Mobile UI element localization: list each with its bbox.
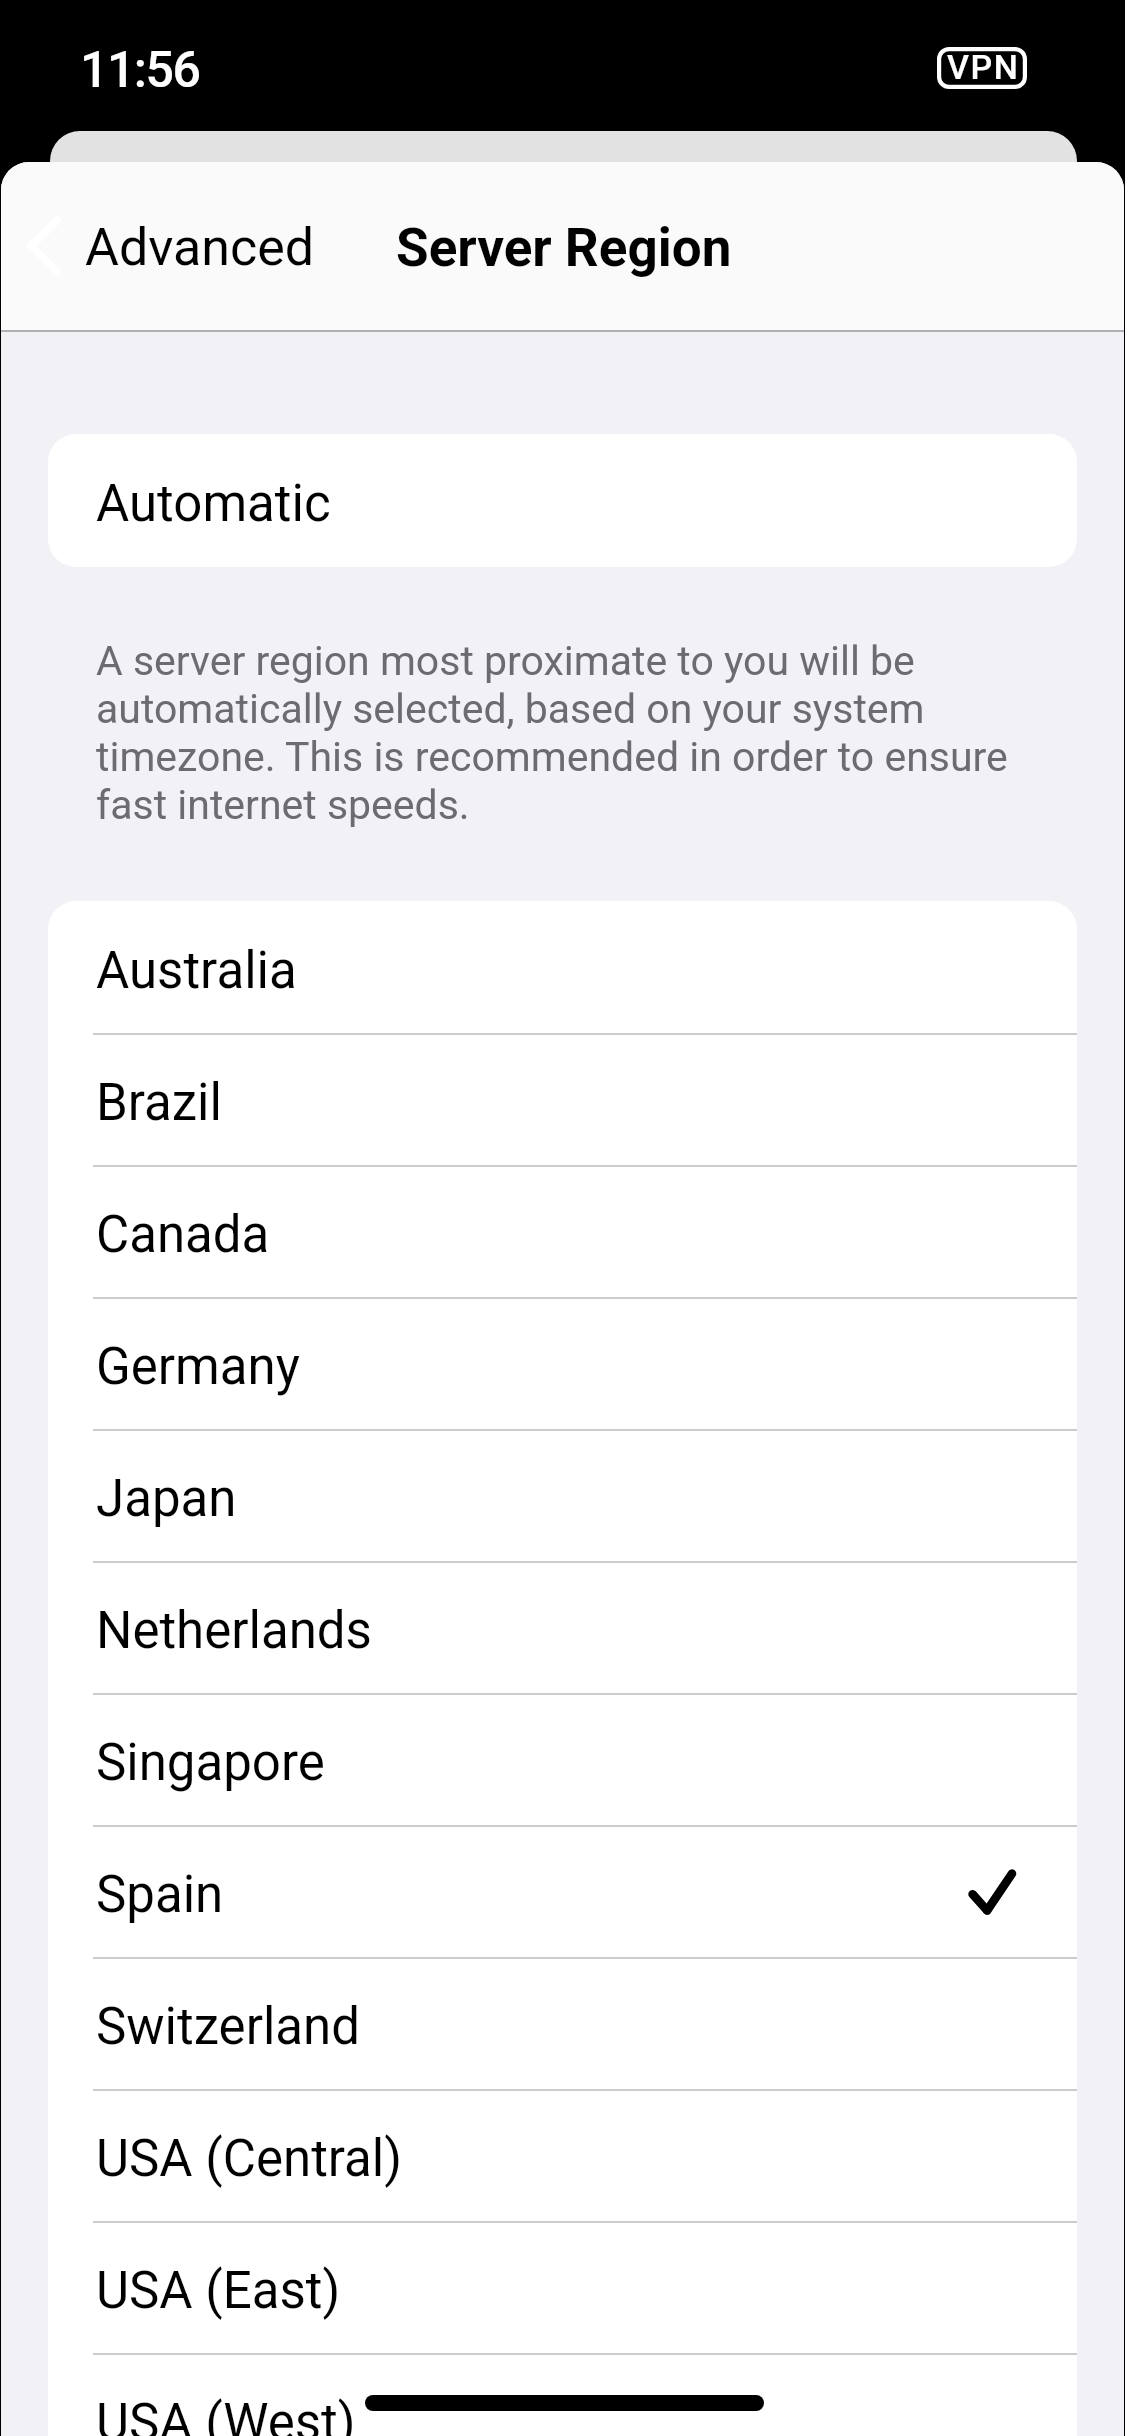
button[interactable]: USA (East) — [48, 2221, 1077, 2353]
button[interactable]: Automatic — [48, 434, 1077, 567]
button[interactable]: Spain — [48, 1825, 1077, 1957]
button[interactable]: USA (Central) — [48, 2089, 1077, 2221]
button[interactable]: Singapore — [48, 1693, 1077, 1825]
staticText: Server Region — [396, 217, 732, 279]
button[interactable]: Canada — [48, 1165, 1077, 1297]
staticText: VPN — [947, 47, 1020, 87]
staticText: Singapore — [96, 1733, 325, 1793]
button[interactable]: Germany — [48, 1297, 1077, 1429]
button[interactable]: Japan — [48, 1429, 1077, 1561]
staticText: Automatic — [96, 474, 331, 534]
staticText: A server region most proximate to you wi… — [96, 637, 1034, 829]
button[interactable]: Switzerland — [48, 1957, 1077, 2089]
staticText: USA (East) — [96, 2261, 341, 2321]
button[interactable]: USA (West) — [48, 2353, 1077, 2436]
button[interactable]: Netherlands — [48, 1561, 1077, 1693]
staticText: Canada — [96, 1205, 270, 1265]
staticText: Germany — [96, 1337, 300, 1397]
button[interactable]: Australia — [48, 901, 1077, 1033]
staticText: USA (Central) — [96, 2129, 402, 2189]
staticText: Netherlands — [96, 1601, 372, 1661]
staticText: Japan — [96, 1469, 237, 1529]
button[interactable]: Back to Advanced — [1, 176, 351, 316]
other: VPN active — [937, 47, 1027, 89]
staticText: Spain — [96, 1865, 224, 1925]
staticText: 11:56 — [80, 41, 200, 100]
staticText: Switzerland — [96, 1997, 360, 2057]
staticText: Advanced — [85, 217, 315, 278]
staticText: USA (West) — [96, 2393, 356, 2436]
button[interactable]: Brazil — [48, 1033, 1077, 1165]
staticText: Brazil — [96, 1073, 222, 1133]
staticText: Australia — [96, 941, 297, 1001]
other: Selected — [968, 1869, 1017, 1915]
